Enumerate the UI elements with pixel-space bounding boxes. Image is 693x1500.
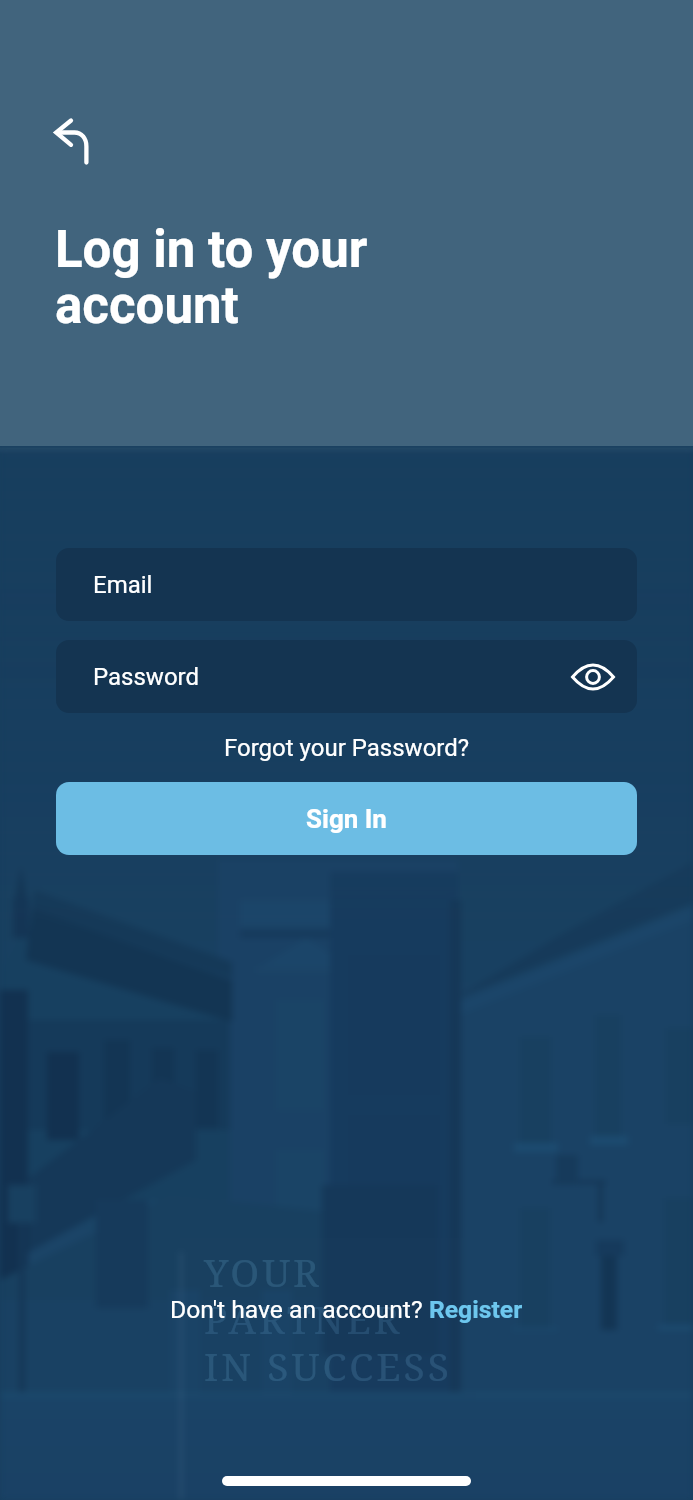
staticText: Log in to your account	[55, 220, 368, 336]
button[interactable]: Email	[56, 548, 637, 621]
staticText: Don't have an account?	[170, 1295, 429, 1324]
button[interactable]: Password	[56, 640, 637, 713]
button[interactable]: Forgot your Password?	[214, 730, 480, 766]
staticText: YOUR	[204, 1245, 322, 1298]
button[interactable]: Show password	[567, 651, 619, 703]
staticText: PARTNER	[204, 1292, 403, 1345]
button[interactable]: Sign In	[56, 782, 637, 855]
staticText: Forgot your Password?	[224, 734, 470, 762]
staticText: Password	[93, 663, 200, 691]
staticText: IN SUCCESS	[204, 1339, 453, 1392]
button[interactable]: Don't have an account?	[0, 1295, 693, 1324]
staticText: Sign In	[306, 804, 387, 834]
button[interactable]: Back	[34, 100, 106, 172]
staticText: Email	[93, 571, 153, 599]
staticText: Register	[429, 1295, 523, 1324]
